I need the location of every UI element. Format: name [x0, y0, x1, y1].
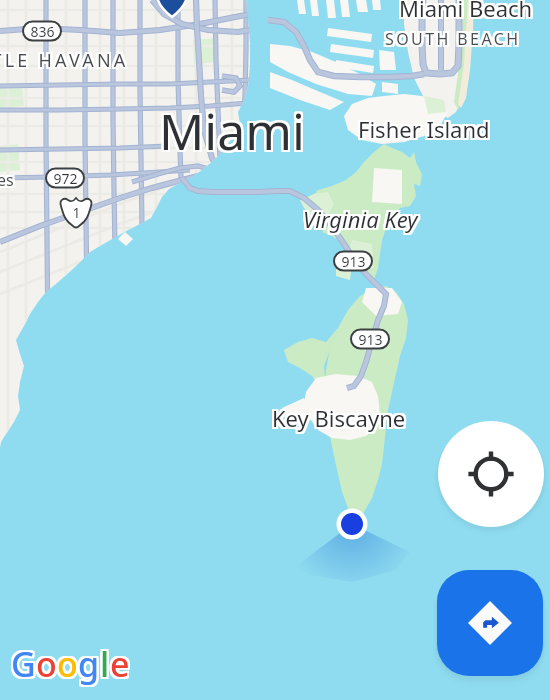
staticText: Virginia Key — [301, 204, 416, 234]
staticText: Miami Beach — [401, 0, 535, 25]
staticText: LITTLE HAVANA — [0, 46, 129, 71]
staticText: Miami — [161, 99, 307, 167]
staticText: Miami Beach — [397, 0, 531, 21]
staticText: Virginia Key — [301, 202, 416, 232]
staticText: l — [98, 641, 108, 687]
staticText: Miami — [161, 97, 307, 165]
staticText: o — [38, 641, 59, 687]
staticText: G — [11, 641, 36, 687]
staticText: es — [0, 171, 14, 193]
staticText: e — [112, 643, 132, 689]
staticText: Virginia Key — [303, 206, 418, 236]
staticText: Virginia Key — [305, 202, 420, 232]
staticText: LITTLE HAVANA — [0, 50, 131, 75]
staticText: LITTLE HAVANA — [0, 48, 127, 73]
staticText: Fisher Island — [360, 112, 492, 142]
staticText: es — [0, 169, 12, 191]
staticText: Fisher Island — [356, 116, 488, 146]
staticText: SOUTH BEACH — [385, 26, 521, 48]
staticText: es — [0, 171, 16, 193]
staticText: l — [98, 643, 108, 689]
staticText: Miami — [157, 95, 303, 163]
staticText: LITTLE HAVANA — [0, 50, 127, 75]
staticText: es — [0, 167, 16, 189]
button[interactable]: Directions — [437, 570, 543, 676]
staticText: 913 — [358, 330, 383, 349]
staticText: g — [76, 643, 98, 689]
staticText: Fisher Island — [356, 114, 488, 144]
staticText: Miami — [157, 99, 303, 167]
staticText: e — [110, 643, 130, 689]
button[interactable]: My location — [438, 421, 544, 527]
staticText: 1 — [72, 203, 81, 222]
staticText: e — [112, 641, 132, 687]
staticText: es — [0, 167, 14, 189]
staticText: o — [57, 639, 78, 685]
staticText: Key Biscayne — [272, 405, 406, 435]
staticText: o — [36, 639, 57, 685]
staticText: Virginia Key — [301, 206, 416, 236]
staticText: o — [59, 639, 80, 685]
staticText: Miami Beach — [399, 0, 533, 21]
staticText: Key Biscayne — [270, 403, 404, 433]
staticText: Miami Beach — [401, 0, 535, 23]
staticText: LITTLE HAVANA — [0, 50, 129, 75]
staticText: e — [112, 639, 132, 685]
staticText: Fisher Island — [356, 112, 488, 142]
staticText: Miami Beach — [399, 0, 533, 25]
staticText: Miami — [159, 99, 305, 167]
staticText: 836 — [30, 22, 55, 41]
staticText: l — [100, 641, 110, 687]
staticText: l — [102, 643, 112, 689]
staticText: e — [110, 641, 130, 687]
staticText: e — [108, 639, 128, 685]
staticText: Miami Beach — [401, 0, 535, 21]
staticText: 972 — [53, 169, 78, 188]
staticText: G — [9, 641, 34, 687]
staticText: o — [36, 643, 57, 689]
staticText: G — [13, 643, 38, 689]
staticText: g — [78, 643, 100, 689]
staticText: Miami Beach — [397, 0, 531, 23]
staticText: SOUTH BEACH — [385, 30, 521, 52]
staticText: G — [9, 639, 34, 685]
staticText: Virginia Key — [305, 204, 420, 234]
staticText: Virginia Key — [305, 206, 420, 236]
staticText: Virginia Key — [303, 202, 418, 232]
staticText: o — [59, 641, 80, 687]
staticText: G — [11, 639, 36, 685]
staticText: Miami — [157, 97, 303, 165]
staticText: o — [59, 643, 80, 689]
staticText: Fisher Island — [358, 114, 490, 144]
staticText: e — [108, 643, 128, 689]
staticText: g — [80, 641, 102, 687]
staticText: Key Biscayne — [274, 403, 408, 433]
staticText: Key Biscayne — [274, 405, 408, 435]
staticText: g — [76, 641, 98, 687]
staticText: SOUTH BEACH — [383, 26, 519, 48]
staticText: o — [38, 639, 59, 685]
staticText: g — [76, 639, 98, 685]
staticText: LITTLE HAVANA — [0, 48, 131, 73]
staticText: SOUTH BEACH — [387, 26, 523, 48]
staticText: Key Biscayne — [270, 405, 404, 435]
staticText: o — [55, 643, 76, 689]
staticText: SOUTH BEACH — [387, 28, 523, 50]
staticText: LITTLE HAVANA — [0, 46, 127, 71]
staticText: l — [100, 643, 110, 689]
staticText: g — [78, 639, 100, 685]
staticText: g — [80, 643, 102, 689]
staticText: Virginia Key — [303, 204, 418, 234]
staticText: Key Biscayne — [274, 401, 408, 431]
staticText: l — [98, 639, 108, 685]
staticText: Miami — [159, 95, 305, 163]
staticText: o — [38, 643, 59, 689]
staticText: Key Biscayne — [272, 401, 406, 431]
staticText: G — [11, 643, 36, 689]
staticText: Key Biscayne — [272, 403, 406, 433]
staticText: es — [0, 169, 14, 191]
staticText: LITTLE HAVANA — [0, 46, 131, 71]
staticText: G — [9, 643, 34, 689]
staticText: Fisher Island — [358, 112, 490, 142]
staticText: es — [0, 171, 12, 193]
